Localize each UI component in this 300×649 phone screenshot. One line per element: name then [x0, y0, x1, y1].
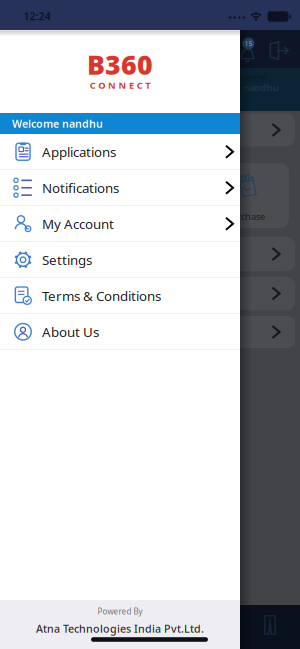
button[interactable]: Applications	[0, 134, 240, 170]
staticText: 15	[244, 39, 252, 48]
staticText: Notifications	[42, 179, 119, 197]
button[interactable]: Terms & Conditions	[0, 278, 240, 314]
button[interactable]: Welcome nandhu	[0, 113, 240, 134]
staticText: CONNECT	[90, 79, 150, 91]
button[interactable]: Settings	[0, 242, 240, 278]
staticText: Terms & Conditions	[42, 287, 161, 305]
staticText: 12:24	[23, 9, 50, 23]
staticText: Powered By	[97, 606, 142, 617]
button[interactable]: Notifications	[240, 47, 254, 62]
staticText: Welcome nandhu	[12, 116, 103, 131]
staticText: Purchase	[225, 210, 265, 223]
staticText: Applications	[42, 143, 116, 161]
button[interactable]: Log out	[269, 41, 288, 60]
button[interactable]: Notifications	[0, 170, 240, 206]
staticText: About Us	[42, 323, 99, 341]
staticText: B360	[87, 47, 153, 82]
staticText: Settings	[42, 251, 92, 269]
button[interactable]: My Account	[0, 206, 240, 242]
staticText: Atna Technologies India Pvt.Ltd.	[36, 621, 204, 636]
staticText: My Account	[42, 215, 114, 233]
staticText: nandhu	[243, 81, 278, 94]
button[interactable]: About Us	[0, 314, 240, 350]
staticText: Welcome	[223, 71, 265, 83]
